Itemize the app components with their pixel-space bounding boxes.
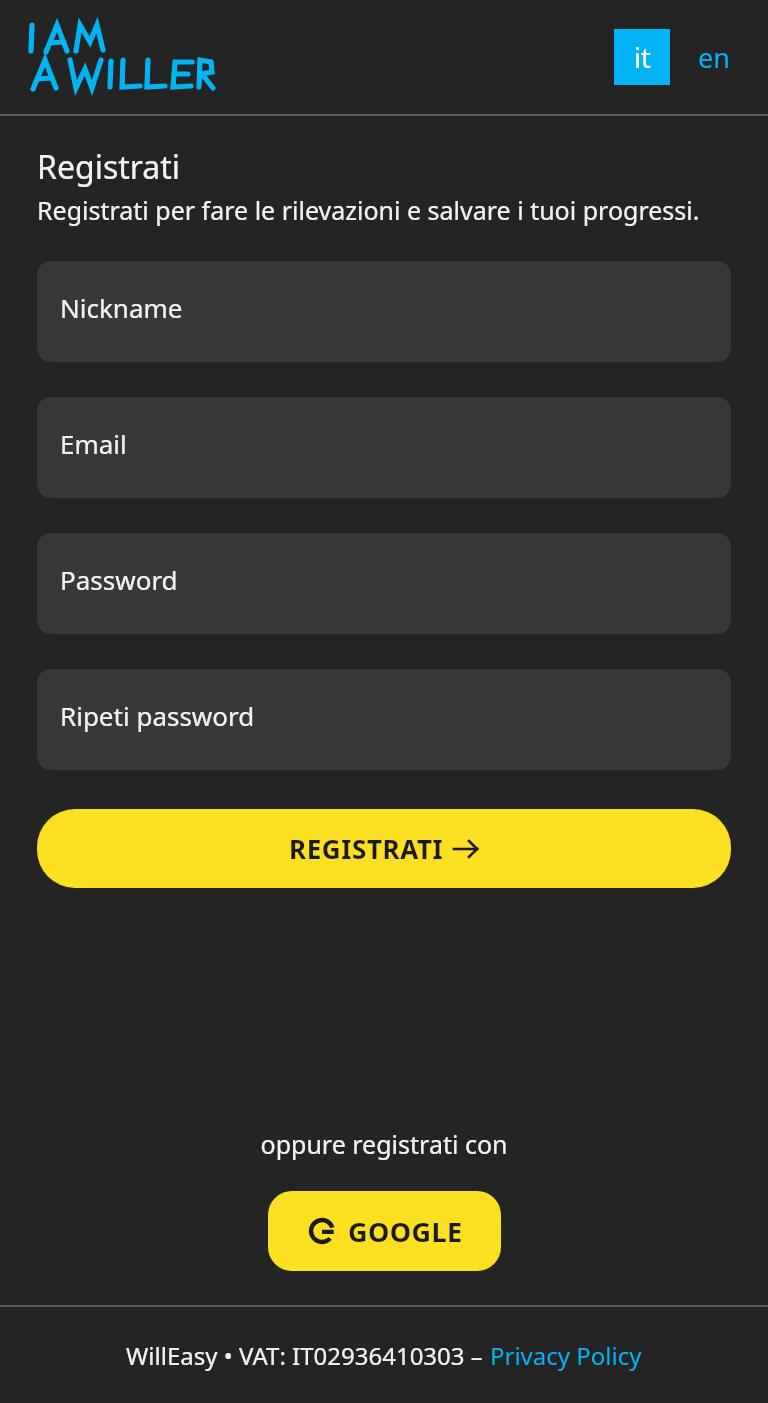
button[interactable]: Password xyxy=(37,533,731,634)
staticText: Privacy Policy xyxy=(490,1339,642,1372)
staticText: Password xyxy=(60,562,178,597)
staticText: WillEasy • VAT: IT02936410303 – xyxy=(126,1339,490,1372)
button[interactable]: GOOGLE xyxy=(268,1191,501,1271)
staticText: en xyxy=(698,39,730,76)
other: I am a Willer logo xyxy=(26,21,214,93)
staticText: it xyxy=(634,39,651,76)
staticText: Email xyxy=(60,426,127,461)
button[interactable]: Nickname xyxy=(37,261,731,362)
button[interactable]: Privacy Policy xyxy=(490,1339,642,1372)
staticText: Registrati xyxy=(37,145,181,189)
staticText: REGISTRATI xyxy=(289,831,444,866)
button[interactable]: it xyxy=(614,29,670,85)
staticText: Ripeti password xyxy=(60,698,255,733)
button[interactable]: REGISTRATI xyxy=(37,809,731,888)
button[interactable]: Ripeti password xyxy=(37,669,731,770)
staticText: Nickname xyxy=(60,290,183,325)
button[interactable]: en xyxy=(686,29,742,85)
button[interactable]: Email xyxy=(37,397,731,498)
staticText: GOOGLE xyxy=(348,1213,463,1250)
staticText: Registrati per fare le rilevazioni e sal… xyxy=(37,193,700,227)
staticText: oppure registrati con xyxy=(0,1127,768,1161)
